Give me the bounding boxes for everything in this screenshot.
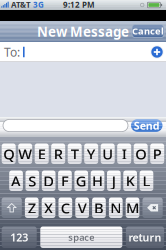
button[interactable]: B: [92, 197, 106, 218]
staticText: A: [11, 171, 21, 190]
button[interactable]: G: [74, 170, 88, 191]
button[interactable]: W: [18, 143, 32, 164]
button[interactable]: C: [58, 197, 72, 218]
button[interactable]: K: [123, 170, 137, 191]
staticText: N: [110, 198, 121, 217]
staticText: 9:12 PM: [63, 0, 95, 10]
staticText: D: [43, 171, 54, 190]
button[interactable]: J: [107, 170, 121, 191]
staticText: J: [112, 171, 116, 190]
button[interactable]: A: [9, 170, 23, 191]
button[interactable]: Z: [25, 197, 39, 218]
staticText: AT&T: [11, 0, 31, 10]
button[interactable]: O: [134, 143, 148, 164]
button[interactable]: Y: [84, 143, 98, 164]
staticText: G: [76, 171, 87, 190]
staticText: Cancel: [132, 25, 164, 37]
button[interactable]: Send: [131, 119, 162, 132]
button[interactable]: F: [58, 170, 72, 191]
button[interactable]: R: [51, 143, 65, 164]
button[interactable]: E: [35, 143, 49, 164]
button[interactable]: S: [25, 170, 39, 191]
button[interactable]: T: [68, 143, 82, 164]
staticText: space: [68, 231, 94, 243]
staticText: V: [78, 198, 87, 217]
staticText: R: [54, 144, 63, 163]
staticText: P: [153, 144, 162, 163]
button[interactable]: L: [140, 170, 153, 191]
staticText: F: [61, 171, 69, 190]
staticText: Q: [3, 144, 14, 163]
staticText: X: [44, 198, 53, 217]
staticText: New Message: [37, 23, 129, 40]
button[interactable]: U: [101, 143, 115, 164]
button[interactable]: P: [150, 143, 164, 164]
staticText: To:: [4, 44, 20, 60]
staticText: Y: [87, 144, 96, 163]
staticText: U: [102, 144, 113, 163]
staticText: O: [135, 144, 146, 163]
staticText: C: [61, 198, 70, 217]
button[interactable]: 123: [2, 226, 37, 248]
button[interactable]: return: [126, 226, 164, 248]
button[interactable]: Add contact: [149, 44, 165, 60]
button[interactable]: Cancel: [132, 24, 164, 37]
staticText: H: [92, 171, 103, 190]
staticText: E: [38, 144, 46, 163]
button[interactable]: H: [91, 170, 104, 191]
staticText: K: [126, 171, 135, 190]
staticText: T: [71, 144, 79, 163]
button[interactable]: D: [42, 170, 55, 191]
staticText: Send: [134, 118, 160, 133]
staticText: Z: [28, 198, 36, 217]
staticText: return: [128, 230, 161, 244]
staticText: 123: [10, 230, 28, 244]
button[interactable]: Q: [2, 143, 16, 164]
button[interactable]: V: [75, 197, 89, 218]
button[interactable]: M: [126, 197, 139, 218]
staticText: W: [18, 144, 32, 163]
button[interactable]: X: [42, 197, 55, 218]
button[interactable]: I: [117, 143, 131, 164]
staticText: 3G: [33, 0, 44, 10]
staticText: S: [28, 171, 36, 190]
staticText: B: [94, 198, 104, 217]
button[interactable]: space: [40, 226, 122, 248]
staticText: M: [126, 198, 139, 217]
button[interactable]: [142, 197, 163, 218]
button[interactable]: N: [109, 197, 123, 218]
staticText: L: [142, 171, 150, 190]
button[interactable]: [2, 197, 22, 218]
staticText: I: [122, 144, 127, 163]
